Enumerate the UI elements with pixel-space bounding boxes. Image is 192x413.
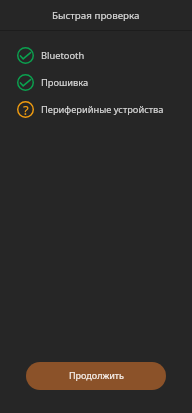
- button[interactable]: Продолжить: [26, 362, 166, 390]
- other: OK: [17, 74, 34, 91]
- button[interactable]: OK: [0, 42, 192, 69]
- other: Unknown: [17, 101, 34, 118]
- staticText: Прошивка: [41, 76, 89, 89]
- staticText: ?: [23, 101, 29, 118]
- button[interactable]: Unknown: [0, 96, 192, 123]
- button[interactable]: OK: [0, 69, 192, 96]
- staticText: Продолжить: [69, 369, 124, 381]
- staticText: Периферийные устройства: [41, 103, 164, 116]
- other: OK: [17, 47, 34, 64]
- staticText: Быстрая проверка: [52, 9, 140, 22]
- staticText: Bluetooth: [41, 49, 85, 62]
